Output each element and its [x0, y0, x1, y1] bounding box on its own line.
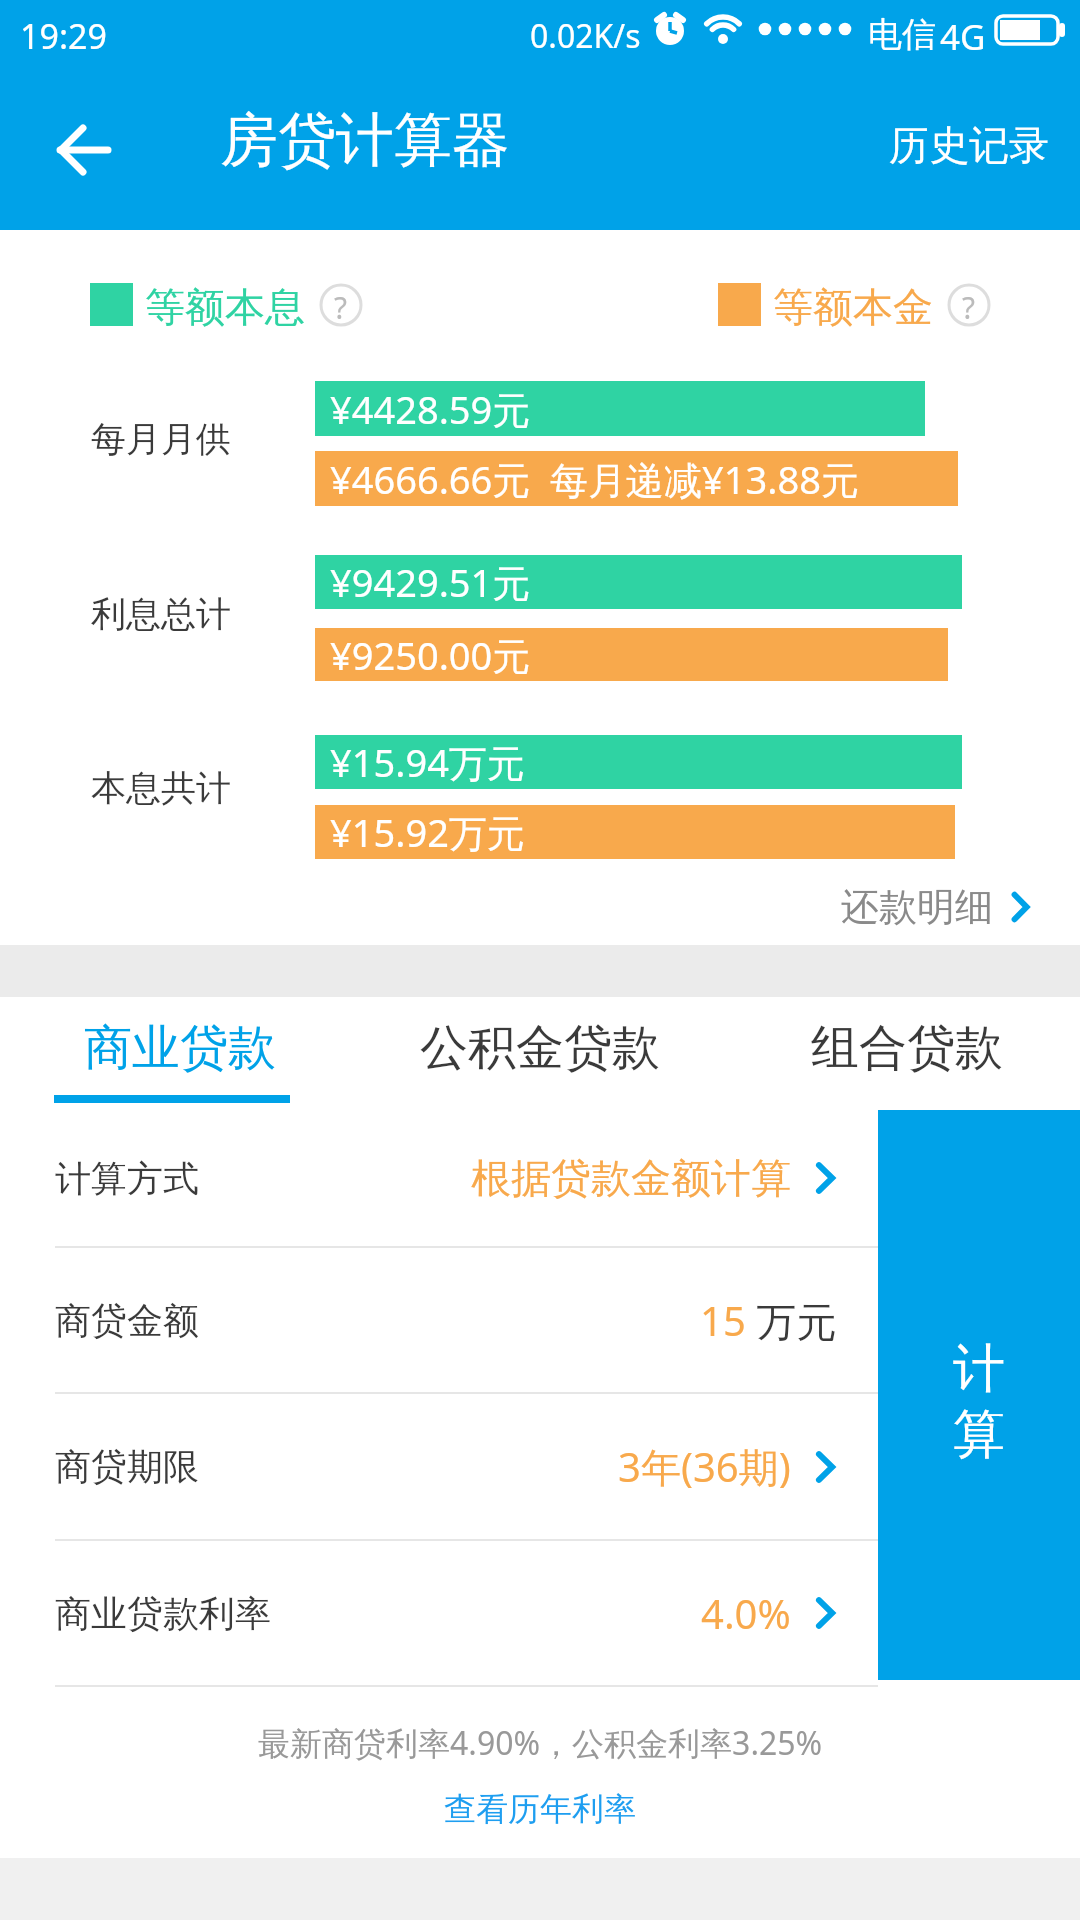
staticText: ¥4666.66元 每月递减¥13.88元 [330, 453, 859, 505]
button[interactable]: 计算方式 [0, 1110, 878, 1246]
staticText: 电信 [868, 13, 936, 56]
staticText: 还款明细 [841, 883, 993, 931]
staticText: 4.0% [701, 1586, 791, 1640]
staticText: 历史记录 [889, 120, 1049, 170]
staticText: 商业贷款利率 [55, 1591, 271, 1636]
staticText: ? [334, 287, 348, 328]
staticText: 商贷金额 [55, 1298, 199, 1343]
staticText: 每月月供 [91, 417, 231, 461]
button[interactable]: 公积金贷款 [360, 997, 720, 1099]
staticText: 根据贷款金额计算 [471, 1153, 791, 1203]
staticText: 15 万元 [700, 1293, 837, 1348]
staticText: 等额本息 [145, 282, 305, 332]
staticText: 4G [940, 13, 986, 61]
staticText: 公积金贷款 [420, 1018, 660, 1078]
staticText: 房贷计算器 [220, 104, 510, 177]
staticText: ¥9250.00元 [330, 629, 531, 681]
staticText: 3年(36期) [618, 1439, 791, 1494]
staticText: 商业贷款 [84, 1018, 276, 1078]
staticText: 查看历年利率 [444, 1789, 636, 1829]
button[interactable]: 历史记录 [869, 105, 1069, 185]
button[interactable]: 商业贷款 [0, 997, 360, 1099]
button[interactable] [36, 102, 132, 198]
staticText: 计 算 [953, 1336, 1005, 1468]
button[interactable]: 还款明细 [841, 880, 1056, 934]
staticText: 计算方式 [55, 1156, 199, 1201]
staticText: 最新商贷利率4.90%，公积金利率3.25% [258, 1721, 823, 1765]
staticText: 等额本金 [773, 282, 933, 332]
staticText: ¥4428.59元 [330, 383, 531, 435]
staticText: 19:29 [20, 13, 107, 59]
staticText: 利息总计 [91, 592, 231, 636]
staticText: ¥9429.51元 [330, 556, 531, 608]
staticText: ¥15.92万元 [330, 806, 525, 858]
button[interactable]: 查看历年利率 [420, 1783, 660, 1835]
button[interactable]: 计 算 [878, 1110, 1080, 1680]
staticText: 0.02K/s [530, 14, 641, 58]
staticText: 本息共计 [91, 766, 231, 810]
staticText: ¥15.94万元 [330, 736, 525, 788]
button[interactable]: 商业贷款利率 [0, 1541, 878, 1685]
staticText: 组合贷款 [811, 1018, 1003, 1078]
button[interactable]: 商贷金额 [0, 1248, 878, 1392]
button[interactable]: 组合贷款 [727, 997, 1080, 1099]
staticText: ? [962, 287, 976, 328]
button[interactable]: 商贷期限 [0, 1394, 878, 1539]
staticText: 商贷期限 [55, 1444, 199, 1489]
